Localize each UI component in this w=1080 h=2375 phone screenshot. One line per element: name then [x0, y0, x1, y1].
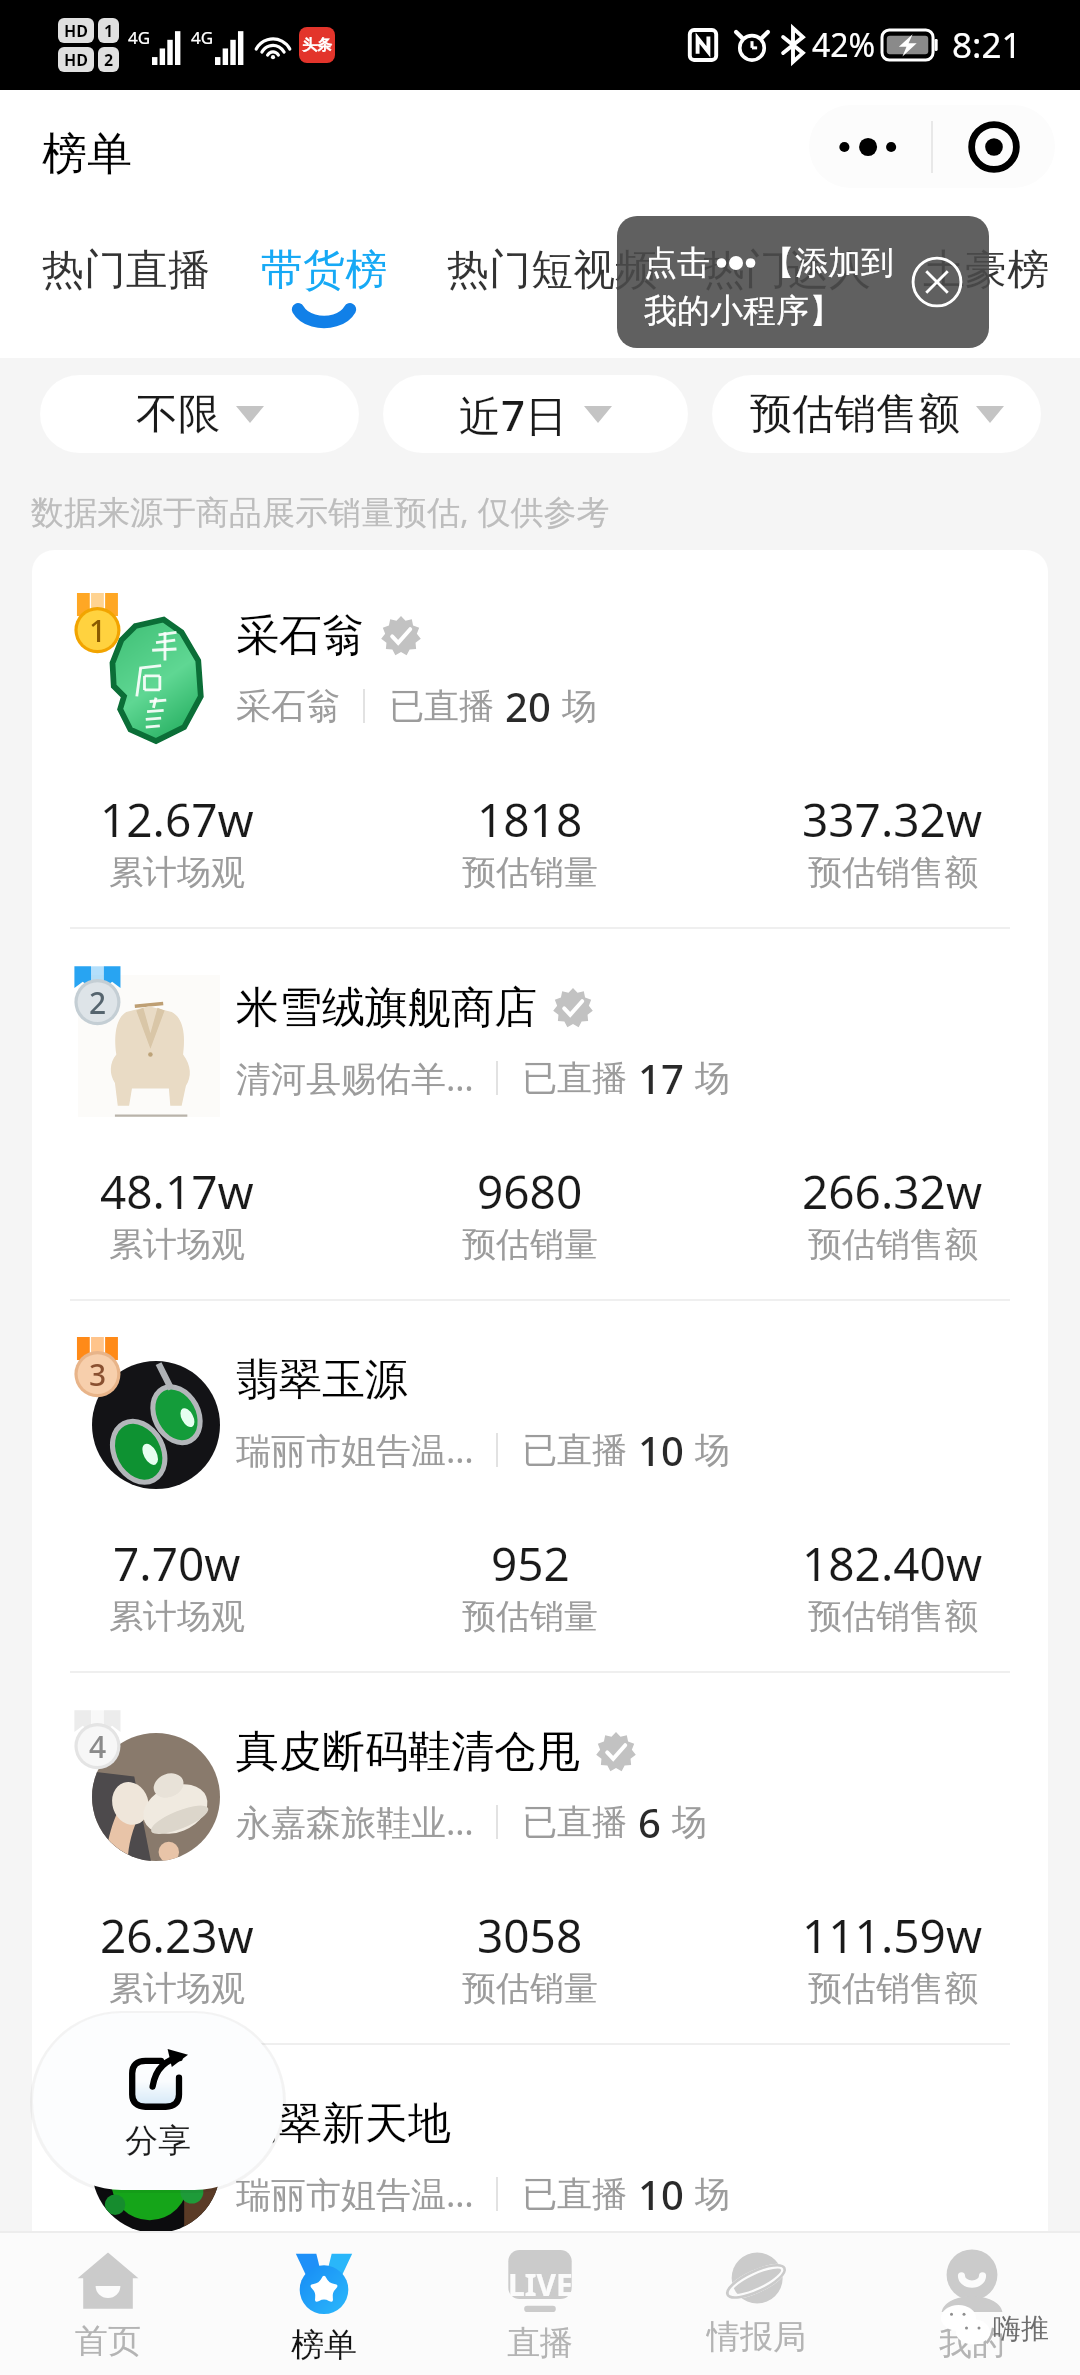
staticText: 分享 — [125, 2120, 191, 2162]
staticText: 48.17w — [100, 1160, 254, 1223]
staticText: 场 — [695, 2172, 730, 2216]
staticText: 土豪榜 — [923, 244, 1049, 297]
button[interactable]: 热门直播 — [42, 202, 210, 297]
button[interactable]: Dismiss tip — [911, 256, 963, 308]
staticText: 9680 — [477, 1160, 583, 1223]
button[interactable]: 预估销售额 — [712, 375, 1041, 453]
button[interactable]: 3 — [32, 1299, 1048, 1672]
button[interactable]: 近7日 — [383, 375, 688, 453]
button[interactable]: 4 — [32, 1671, 1048, 2044]
button[interactable]: 首页 — [0, 2231, 216, 2375]
staticText: 已直播 — [522, 1428, 627, 1472]
staticText: 首页 — [75, 2320, 141, 2362]
staticText: 热门短视频 — [447, 244, 657, 297]
staticText: 直播 — [507, 2322, 573, 2364]
staticText: 4 — [89, 1726, 107, 1767]
staticText: 337.32w — [802, 788, 983, 851]
staticText: 已直播 — [522, 1056, 627, 1100]
staticText: 热门达人 — [703, 244, 871, 297]
staticText: 17 — [638, 1051, 684, 1105]
staticText: 已直播 — [389, 684, 494, 728]
button[interactable]: 榜单 — [216, 2231, 432, 2375]
staticText: 182.40w — [802, 1532, 983, 1595]
staticText: 带货榜 — [261, 244, 387, 297]
staticText: 7.70w — [113, 1532, 241, 1595]
button[interactable]: LIVE — [432, 2231, 648, 2375]
staticText: 真皮断码鞋清仓甩 — [236, 1725, 580, 1779]
staticText: HD — [64, 49, 88, 71]
staticText: 不限 — [136, 388, 220, 441]
staticText: 榜单 — [42, 126, 132, 183]
staticText: 点击 — [644, 242, 710, 284]
staticText: 累计场观 — [109, 1967, 245, 2010]
staticText: 12.67w — [100, 788, 254, 851]
staticText: 瑞丽市姐告温… — [236, 1426, 474, 1474]
staticText: 累计场观 — [109, 851, 245, 894]
staticText: 预估销售额 — [808, 1967, 978, 2010]
button[interactable]: 1 — [32, 555, 1048, 928]
staticText: 近7日 — [459, 386, 568, 443]
staticText: 26.23w — [100, 1904, 254, 1967]
staticText: 场 — [695, 1056, 730, 1100]
staticText: 1 — [89, 610, 107, 651]
staticText: 瑞丽市姐告温… — [236, 2170, 474, 2218]
staticText: 米雪绒旗舰商店 — [236, 981, 537, 1035]
staticText: 42% — [812, 23, 876, 67]
staticText: 我的小程序】 — [644, 290, 842, 332]
staticText: 翡翠新天地 — [236, 2097, 451, 2151]
staticText: 累计场观 — [109, 1595, 245, 1638]
staticText: 2 — [89, 982, 107, 1023]
staticText: 预估销量 — [462, 1967, 598, 2010]
staticText: 预估销量 — [462, 1595, 598, 1638]
staticText: 3058 — [477, 1904, 583, 1967]
staticText: 20 — [505, 679, 551, 733]
staticText: 10 — [638, 1423, 684, 1477]
staticText: 场 — [695, 1428, 730, 1472]
button[interactable]: Close mini program — [933, 105, 1055, 188]
staticText: 预估销量 — [462, 851, 598, 894]
staticText: 10 — [638, 2167, 684, 2221]
staticText: 热门直播 — [42, 244, 210, 297]
staticText: 预估销售额 — [808, 1595, 978, 1638]
button[interactable]: 5 — [32, 2043, 1048, 2231]
staticText: 我的 — [939, 2322, 1005, 2364]
staticText: 1 — [104, 20, 114, 42]
staticText: 数据来源于商品展示销量预估, 仅供参考 — [31, 489, 610, 534]
staticText: 2 — [104, 49, 114, 71]
staticText: 嗨推 — [993, 2311, 1049, 2346]
staticText: 翡翠玉源 — [236, 1353, 408, 1407]
staticText: 采石翁 — [236, 609, 365, 663]
staticText: 【添加到 — [762, 242, 894, 284]
staticText: 预估销售额 — [808, 851, 978, 894]
staticText: 8:21 — [952, 21, 1022, 69]
staticText: 采石翁 — [236, 684, 341, 728]
staticText: 预估销量 — [462, 1223, 598, 1266]
button[interactable]: 情报局 — [648, 2231, 864, 2375]
button[interactable]: More options — [809, 105, 931, 188]
staticText: 952 — [491, 1532, 570, 1595]
button[interactable]: 2 — [32, 927, 1048, 1300]
button[interactable]: 土豪榜 — [923, 202, 1049, 297]
button[interactable]: 带货榜 — [261, 202, 387, 322]
staticText: 266.32w — [802, 1160, 983, 1223]
staticText: 累计场观 — [109, 1223, 245, 1266]
button[interactable]: 热门短视频 — [447, 202, 657, 297]
staticText: LIVE — [508, 2264, 573, 2305]
staticText: 4G — [128, 26, 151, 49]
staticText: 预估销售额 — [750, 388, 960, 441]
staticText: 4G — [191, 26, 214, 49]
staticText: 榜单 — [291, 2324, 357, 2366]
staticText: 3 — [89, 1354, 107, 1395]
staticText: 6 — [638, 1795, 661, 1849]
staticText: HD — [64, 20, 88, 42]
staticText: 场 — [562, 684, 597, 728]
button[interactable]: 热门达人 — [703, 202, 871, 297]
staticText: 111.59w — [802, 1904, 983, 1967]
button[interactable]: 不限 — [40, 375, 359, 453]
staticText: 清河县赐佑羊… — [236, 1054, 474, 1102]
staticText: 场 — [672, 1800, 707, 1844]
button[interactable]: 我的 — [864, 2231, 1080, 2375]
button[interactable]: Share — [33, 2013, 283, 2190]
staticText: 头条 — [302, 36, 332, 55]
